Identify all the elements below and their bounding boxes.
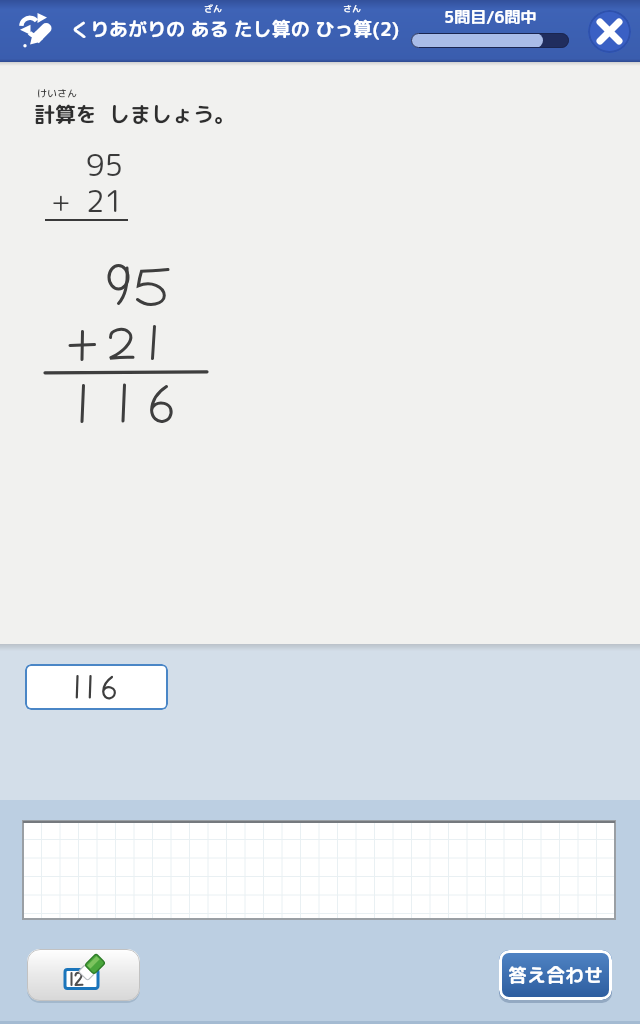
button[interactable] bbox=[588, 10, 631, 53]
button[interactable] bbox=[25, 664, 168, 710]
staticText: けいさん bbox=[37, 86, 77, 100]
staticText: 95 bbox=[86, 144, 124, 186]
staticText: 計算を しましょう。 bbox=[34, 99, 235, 128]
staticText: 答え合わせ bbox=[508, 962, 604, 989]
button[interactable]: 答え合わせ bbox=[499, 950, 612, 1000]
staticText: くりあがりの ある たし算の ひっ算(2) bbox=[71, 16, 400, 43]
button[interactable] bbox=[23, 821, 615, 919]
staticText: + bbox=[51, 182, 71, 220]
staticText: 21 bbox=[86, 180, 124, 222]
staticText: 5問目/6問中 bbox=[444, 6, 537, 28]
staticText: ざん bbox=[204, 2, 223, 15]
staticText: さん bbox=[343, 2, 362, 15]
button[interactable] bbox=[27, 949, 140, 1001]
